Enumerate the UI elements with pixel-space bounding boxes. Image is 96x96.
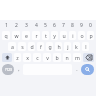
staticText: s xyxy=(21,43,24,50)
staticText: c xyxy=(36,54,39,61)
staticText: a xyxy=(11,43,14,50)
button[interactable]: i xyxy=(69,31,76,40)
button[interactable]: l xyxy=(82,42,89,51)
button[interactable]: 8 xyxy=(68,21,77,30)
button[interactable]: s xyxy=(18,42,26,51)
staticText: b xyxy=(55,54,59,61)
button[interactable]: q xyxy=(2,31,10,40)
button[interactable]: a xyxy=(8,42,16,51)
staticText: i xyxy=(72,32,74,39)
button[interactable]: p xyxy=(87,31,94,40)
staticText: k xyxy=(75,43,78,50)
staticText: . xyxy=(76,66,78,73)
button[interactable]: . xyxy=(73,63,80,76)
button[interactable]: t xyxy=(42,31,49,40)
staticText: p xyxy=(89,32,93,39)
staticText: d xyxy=(30,43,34,50)
button[interactable]: h xyxy=(55,42,62,51)
button[interactable]: 1 xyxy=(1,21,11,30)
button[interactable]: w xyxy=(12,31,20,40)
button[interactable]: e xyxy=(22,31,30,40)
staticText: m xyxy=(75,54,80,61)
staticText: , xyxy=(18,66,20,73)
button[interactable]: 9 xyxy=(77,21,86,30)
staticText: o xyxy=(80,32,84,39)
staticText: ?123 xyxy=(5,68,12,72)
staticText: h xyxy=(57,43,61,50)
staticText: 6 xyxy=(53,22,56,29)
button[interactable]: u xyxy=(60,31,67,40)
button[interactable]: , xyxy=(15,63,22,76)
button[interactable]: Shift xyxy=(2,53,12,62)
button[interactable]: d xyxy=(28,42,35,51)
staticText: 9 xyxy=(80,22,83,29)
staticText: z xyxy=(16,54,19,61)
staticText: g xyxy=(48,43,52,50)
button[interactable]: 2 xyxy=(11,21,21,30)
staticText: q xyxy=(4,32,8,39)
staticText: 5 xyxy=(44,22,47,29)
staticText: 1 xyxy=(5,22,8,29)
button[interactable]: r xyxy=(32,31,40,40)
staticText: e xyxy=(25,32,28,39)
staticText: f xyxy=(40,43,42,50)
staticText: r xyxy=(35,32,38,39)
button[interactable]: o xyxy=(78,31,85,40)
button[interactable]: Search xyxy=(81,64,94,75)
staticText: u xyxy=(62,32,66,39)
button[interactable]: 5 xyxy=(41,21,50,30)
staticText: v xyxy=(46,54,49,61)
staticText: 3 xyxy=(25,22,28,29)
staticText: y xyxy=(53,32,56,39)
button[interactable]: y xyxy=(51,31,58,40)
button[interactable]: 4 xyxy=(31,21,41,30)
button[interactable]: x xyxy=(23,53,31,62)
button[interactable]: v xyxy=(43,53,51,62)
staticText: n xyxy=(65,54,69,61)
staticText: x xyxy=(26,54,29,61)
staticText: 4 xyxy=(35,22,38,29)
staticText: 7 xyxy=(62,22,65,29)
button[interactable]: ?123 xyxy=(2,64,14,75)
button[interactable]: n xyxy=(63,53,71,62)
staticText: 2 xyxy=(15,22,18,29)
button[interactable]: 3 xyxy=(21,21,31,30)
button[interactable]: 6 xyxy=(50,21,59,30)
button[interactable]: k xyxy=(73,42,80,51)
button[interactable]: 0 xyxy=(86,21,95,30)
staticText: t xyxy=(45,32,47,39)
button[interactable]: c xyxy=(33,53,41,62)
staticText: w xyxy=(14,32,19,39)
button[interactable]: g xyxy=(46,42,53,51)
button[interactable]: 7 xyxy=(59,21,68,30)
button[interactable]: f xyxy=(37,42,44,51)
staticText: j xyxy=(67,43,69,50)
staticText: 0 xyxy=(89,22,92,29)
button[interactable]: b xyxy=(53,53,61,62)
button[interactable]: Backspace xyxy=(83,53,94,62)
button[interactable]: j xyxy=(64,42,71,51)
staticText: 8 xyxy=(71,22,74,29)
button[interactable]: m xyxy=(73,53,81,62)
button[interactable]: z xyxy=(14,53,21,62)
staticText: l xyxy=(85,43,87,50)
